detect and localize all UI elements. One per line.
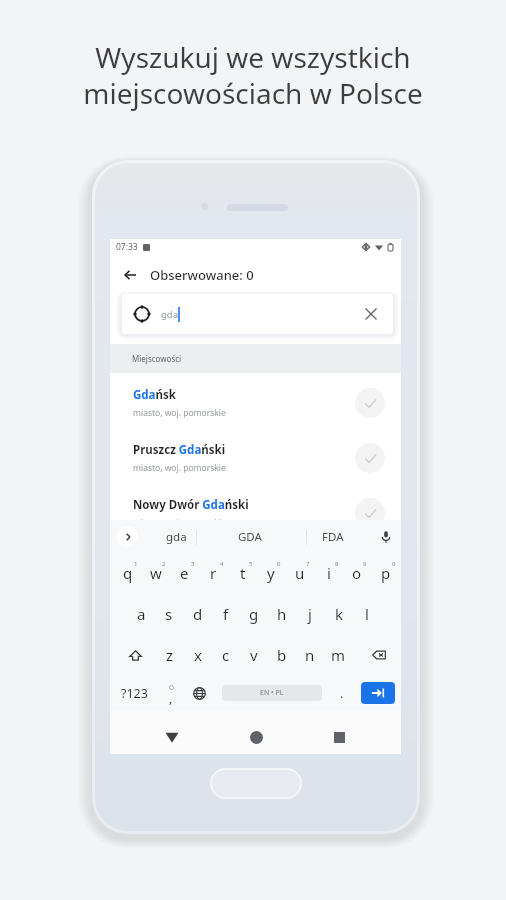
staticText: EN • PL [260, 688, 284, 698]
staticText: 7 [306, 560, 310, 568]
staticText: ?123 [121, 685, 148, 702]
button[interactable]: EN • PL [222, 685, 322, 701]
staticText: n [305, 645, 315, 665]
button[interactable]: gda [122, 294, 393, 334]
staticText: c [222, 645, 230, 665]
button[interactable]: Back [119, 264, 141, 286]
staticText: miasto, woj. pomorskie [133, 517, 226, 529]
button[interactable]: r [199, 552, 228, 593]
staticText: p [381, 563, 391, 583]
staticText: i [327, 563, 331, 583]
button[interactable]: w [141, 552, 170, 593]
staticText: Obserwowane: 0 [150, 266, 254, 284]
staticText: 6 [277, 560, 281, 568]
staticText: v [250, 645, 258, 665]
staticText: miasto, woj. pomorskie [133, 462, 226, 474]
staticText: q [123, 563, 133, 583]
staticText: s [165, 604, 173, 624]
staticText: 1 [134, 560, 138, 568]
button[interactable]: Comma [157, 677, 185, 709]
staticText: u [295, 563, 305, 583]
staticText: f [223, 604, 229, 624]
button[interactable]: t [228, 552, 257, 593]
staticText: 0 [392, 560, 396, 568]
staticText: , [169, 690, 173, 707]
staticText: r [210, 563, 217, 583]
button[interactable]: Show more suggestions [117, 526, 138, 547]
button[interactable]: f [212, 593, 240, 634]
staticText: l [365, 604, 369, 624]
button[interactable]: j [296, 593, 324, 634]
button[interactable]: x [184, 634, 212, 676]
button[interactable]: ?123 [111, 677, 157, 709]
button[interactable]: FDA [303, 520, 363, 554]
button[interactable]: i [314, 552, 343, 593]
button[interactable]: n [296, 634, 324, 676]
button[interactable]: q [113, 552, 142, 593]
button[interactable]: h [268, 593, 296, 634]
button[interactable]: l [353, 593, 381, 634]
button[interactable]: v [240, 634, 268, 676]
staticText: d [193, 604, 203, 624]
button[interactable]: Period [329, 677, 355, 709]
staticText: k [335, 604, 344, 624]
button[interactable]: u [285, 552, 314, 593]
staticText: 9 [363, 560, 367, 568]
button[interactable]: g [240, 593, 268, 634]
button[interactable]: Back [154, 710, 190, 754]
button[interactable]: m [324, 634, 352, 676]
staticText: gda [166, 529, 187, 545]
button[interactable]: Voice input [372, 520, 400, 554]
button[interactable]: Gdańsk [110, 375, 401, 430]
button[interactable]: GDA [220, 520, 280, 554]
button[interactable]: Backspace [361, 634, 397, 676]
button[interactable]: o [342, 552, 371, 593]
button[interactable]: Follow city [355, 443, 385, 473]
button[interactable]: Next field [361, 682, 395, 704]
button[interactable]: Shift [117, 634, 153, 676]
staticText: miasto, woj. pomorskie [133, 407, 226, 419]
button[interactable]: Home [238, 710, 274, 754]
staticText: z [166, 645, 174, 665]
staticText: x [194, 645, 202, 665]
button[interactable]: b [268, 634, 296, 676]
staticText: 8 [335, 560, 339, 568]
staticText: 2 [162, 560, 166, 568]
staticText: Nowy Dwór Gdański [133, 497, 249, 513]
button[interactable]: z [156, 634, 184, 676]
staticText: b [277, 645, 287, 665]
button[interactable]: Change keyboard language [184, 677, 214, 709]
button[interactable]: c [212, 634, 240, 676]
button[interactable]: Nowy Dwór Gdański [110, 485, 401, 540]
staticText: . [340, 685, 344, 702]
staticText: GDA [238, 529, 262, 545]
button[interactable]: p [371, 552, 400, 593]
button[interactable]: e [170, 552, 199, 593]
staticText: y [267, 563, 275, 583]
staticText: m [331, 645, 346, 665]
staticText: o [352, 563, 362, 583]
button[interactable]: Follow city [355, 388, 385, 418]
staticText: Wyszukuj we wszystkich miejscowościach w… [83, 38, 423, 112]
staticText: 5 [249, 560, 253, 568]
staticText: 07:33 [116, 241, 138, 253]
button[interactable]: y [256, 552, 285, 593]
button[interactable]: Clear search [361, 304, 381, 324]
button[interactable]: k [325, 593, 353, 634]
button[interactable]: a [127, 593, 155, 634]
staticText: 3 [191, 560, 195, 568]
staticText: e [180, 563, 189, 583]
button[interactable]: s [155, 593, 183, 634]
staticText: j [308, 604, 312, 624]
staticText: Pruszcz Gdański [133, 442, 226, 458]
staticText: 4 [220, 560, 224, 568]
button[interactable]: Recent apps [321, 710, 357, 754]
staticText: g [249, 604, 259, 624]
staticText: Gdańsk [133, 387, 176, 403]
button[interactable]: Follow city [355, 498, 385, 528]
button[interactable]: d [184, 593, 212, 634]
staticText: t [240, 563, 246, 583]
staticText: FDA [322, 529, 344, 545]
button[interactable]: gda [146, 520, 206, 554]
button[interactable]: Pruszcz Gdański [110, 430, 401, 485]
